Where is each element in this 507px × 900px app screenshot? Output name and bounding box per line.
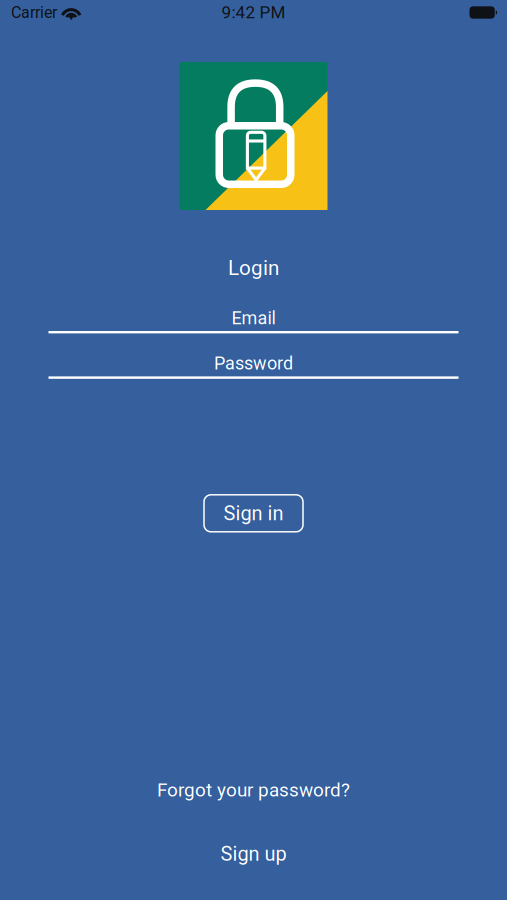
staticText: Sign up [220,842,286,866]
button[interactable]: Sign up [220,842,286,866]
staticText: 9:42 PM [221,2,285,22]
button[interactable]: Sign in [204,495,303,532]
staticText: Email [231,307,275,329]
staticText: Forgot your password? [157,779,350,801]
staticText: Sign in [223,502,283,525]
button[interactable]: Forgot your password? [157,778,350,802]
staticText: Login [228,256,279,280]
staticText: Carrier [11,3,57,22]
staticText: Password [214,353,293,374]
